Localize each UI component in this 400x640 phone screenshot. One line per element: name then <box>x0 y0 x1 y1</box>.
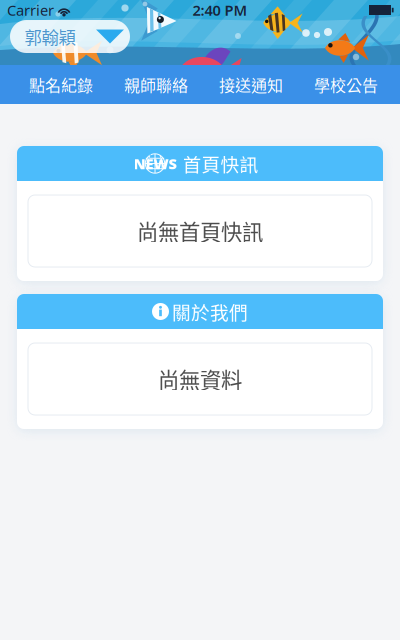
staticText: 關於我們 <box>172 298 248 325</box>
button[interactable]: 親師聯絡 <box>108 65 203 104</box>
staticText: NEWS <box>133 154 176 173</box>
button[interactable]: 點名紀錄 <box>13 65 108 104</box>
staticText: 2:40 PM <box>192 0 247 20</box>
staticText: 尚無首頁快訊 <box>137 216 263 246</box>
button[interactable]: 學校公告 <box>298 65 393 104</box>
staticText: Carrier <box>7 0 54 20</box>
staticText: 首頁快訊 <box>182 150 258 177</box>
staticText: 親師聯絡 <box>124 73 188 96</box>
staticText: 尚無資料 <box>158 364 242 394</box>
staticText: 郭翰穎 <box>24 24 75 49</box>
staticText: 點名紀錄 <box>29 73 93 96</box>
button[interactable]: 接送通知 <box>203 65 298 104</box>
staticText: 學校公告 <box>314 73 378 96</box>
button[interactable]: 郭翰穎 <box>10 20 130 53</box>
staticText: 接送通知 <box>219 73 283 96</box>
